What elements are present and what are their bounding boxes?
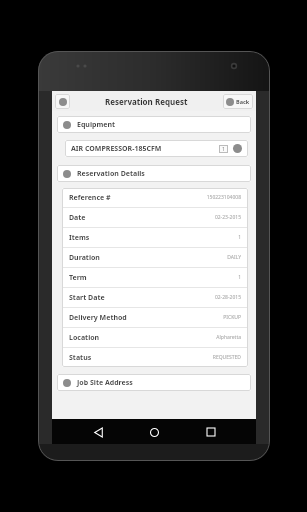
button[interactable]: Status [62, 348, 248, 367]
staticText: 1 [222, 146, 225, 153]
button[interactable]: Recent apps [200, 421, 222, 443]
staticText: 150223104008 [206, 194, 241, 201]
button[interactable]: Back [223, 94, 253, 109]
staticText: 1 [238, 234, 241, 241]
staticText: DAILY [227, 254, 241, 261]
button[interactable]: Location [62, 328, 248, 347]
staticText: Term [69, 273, 87, 283]
staticText: PICKUP [223, 314, 241, 321]
button[interactable]: Date [62, 208, 248, 227]
button[interactable]: Reference # [62, 188, 248, 207]
button[interactable]: Menu [55, 94, 70, 109]
staticText: Job Site Address [77, 378, 133, 388]
staticText: Equipment [77, 120, 116, 130]
button[interactable]: Duration [62, 248, 248, 267]
staticText: 02-23-2015 [214, 214, 241, 221]
staticText: REQUESTED [212, 354, 241, 361]
staticText: Start Date [69, 293, 105, 303]
button[interactable]: AIR COMPRESSOR-185CFM [65, 140, 248, 157]
button[interactable]: Term [62, 268, 248, 287]
button[interactable]: Equipment [57, 116, 251, 133]
staticText: Reservation Request [105, 96, 188, 107]
staticText: Items [69, 233, 90, 243]
staticText: 02-28-2015 [214, 294, 241, 301]
staticText: AIR COMPRESSOR-185CFM [71, 144, 162, 154]
button[interactable]: Delivery Method [62, 308, 248, 327]
staticText: Alpharetta [216, 334, 241, 341]
button[interactable]: Reservation Details [57, 165, 251, 182]
staticText: Delivery Method [69, 313, 127, 323]
staticText: 1 [238, 274, 241, 281]
button[interactable]: Home [143, 421, 165, 443]
button[interactable]: Start Date [62, 288, 248, 307]
staticText: Reservation Details [77, 169, 145, 179]
staticText: Status [69, 353, 92, 363]
staticText: Date [69, 213, 86, 223]
staticText: Reference # [69, 193, 111, 203]
button[interactable]: Job Site Address [57, 374, 251, 391]
staticText: Location [69, 333, 100, 343]
staticText: Back [236, 98, 250, 105]
button[interactable]: Items [62, 228, 248, 247]
button[interactable]: Back [87, 421, 109, 443]
staticText: Duration [69, 253, 100, 263]
